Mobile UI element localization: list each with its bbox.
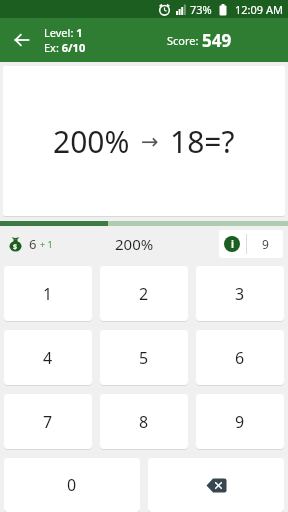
button[interactable]: 9 (196, 394, 284, 449)
staticText: $ (13, 242, 18, 252)
staticText: 9 (235, 411, 245, 433)
staticText: 200% (115, 234, 154, 254)
button[interactable]: 2 (100, 266, 188, 321)
staticText: Score: (167, 33, 202, 48)
staticText: Level: 1 (44, 25, 83, 40)
staticText: 9 (262, 236, 269, 252)
button[interactable]: 4 (4, 330, 92, 385)
button[interactable]: 0 (4, 458, 140, 512)
button[interactable]: 5 (100, 330, 188, 385)
staticText: 12:09 AM (235, 2, 283, 17)
staticText: 6 (235, 347, 245, 369)
staticText: 4 (43, 347, 53, 369)
staticText: 18=? (170, 121, 235, 162)
staticText: 6 (29, 235, 37, 253)
staticText: i (231, 237, 234, 251)
staticText: 3 (235, 283, 245, 305)
staticText: 8 (139, 411, 149, 433)
staticText: Ex: 6/10 (44, 40, 86, 55)
staticText: 73% (190, 2, 212, 17)
staticText: 7 (43, 411, 53, 433)
button[interactable]: i (219, 230, 283, 258)
staticText: 200% (53, 121, 130, 162)
staticText: + 1 (40, 238, 53, 250)
staticText: → (130, 127, 170, 156)
staticText: 0 (67, 474, 77, 496)
button[interactable] (148, 458, 284, 512)
staticText: 549 (202, 29, 232, 52)
button[interactable]: 6 (196, 330, 284, 385)
button[interactable] (0, 18, 44, 62)
button[interactable]: 3 (196, 266, 284, 321)
staticText: 2 (139, 283, 149, 305)
button[interactable]: 1 (4, 266, 92, 321)
staticText: 1 (43, 283, 53, 305)
staticText: 5 (139, 347, 149, 369)
button[interactable]: 7 (4, 394, 92, 449)
button[interactable]: 8 (100, 394, 188, 449)
